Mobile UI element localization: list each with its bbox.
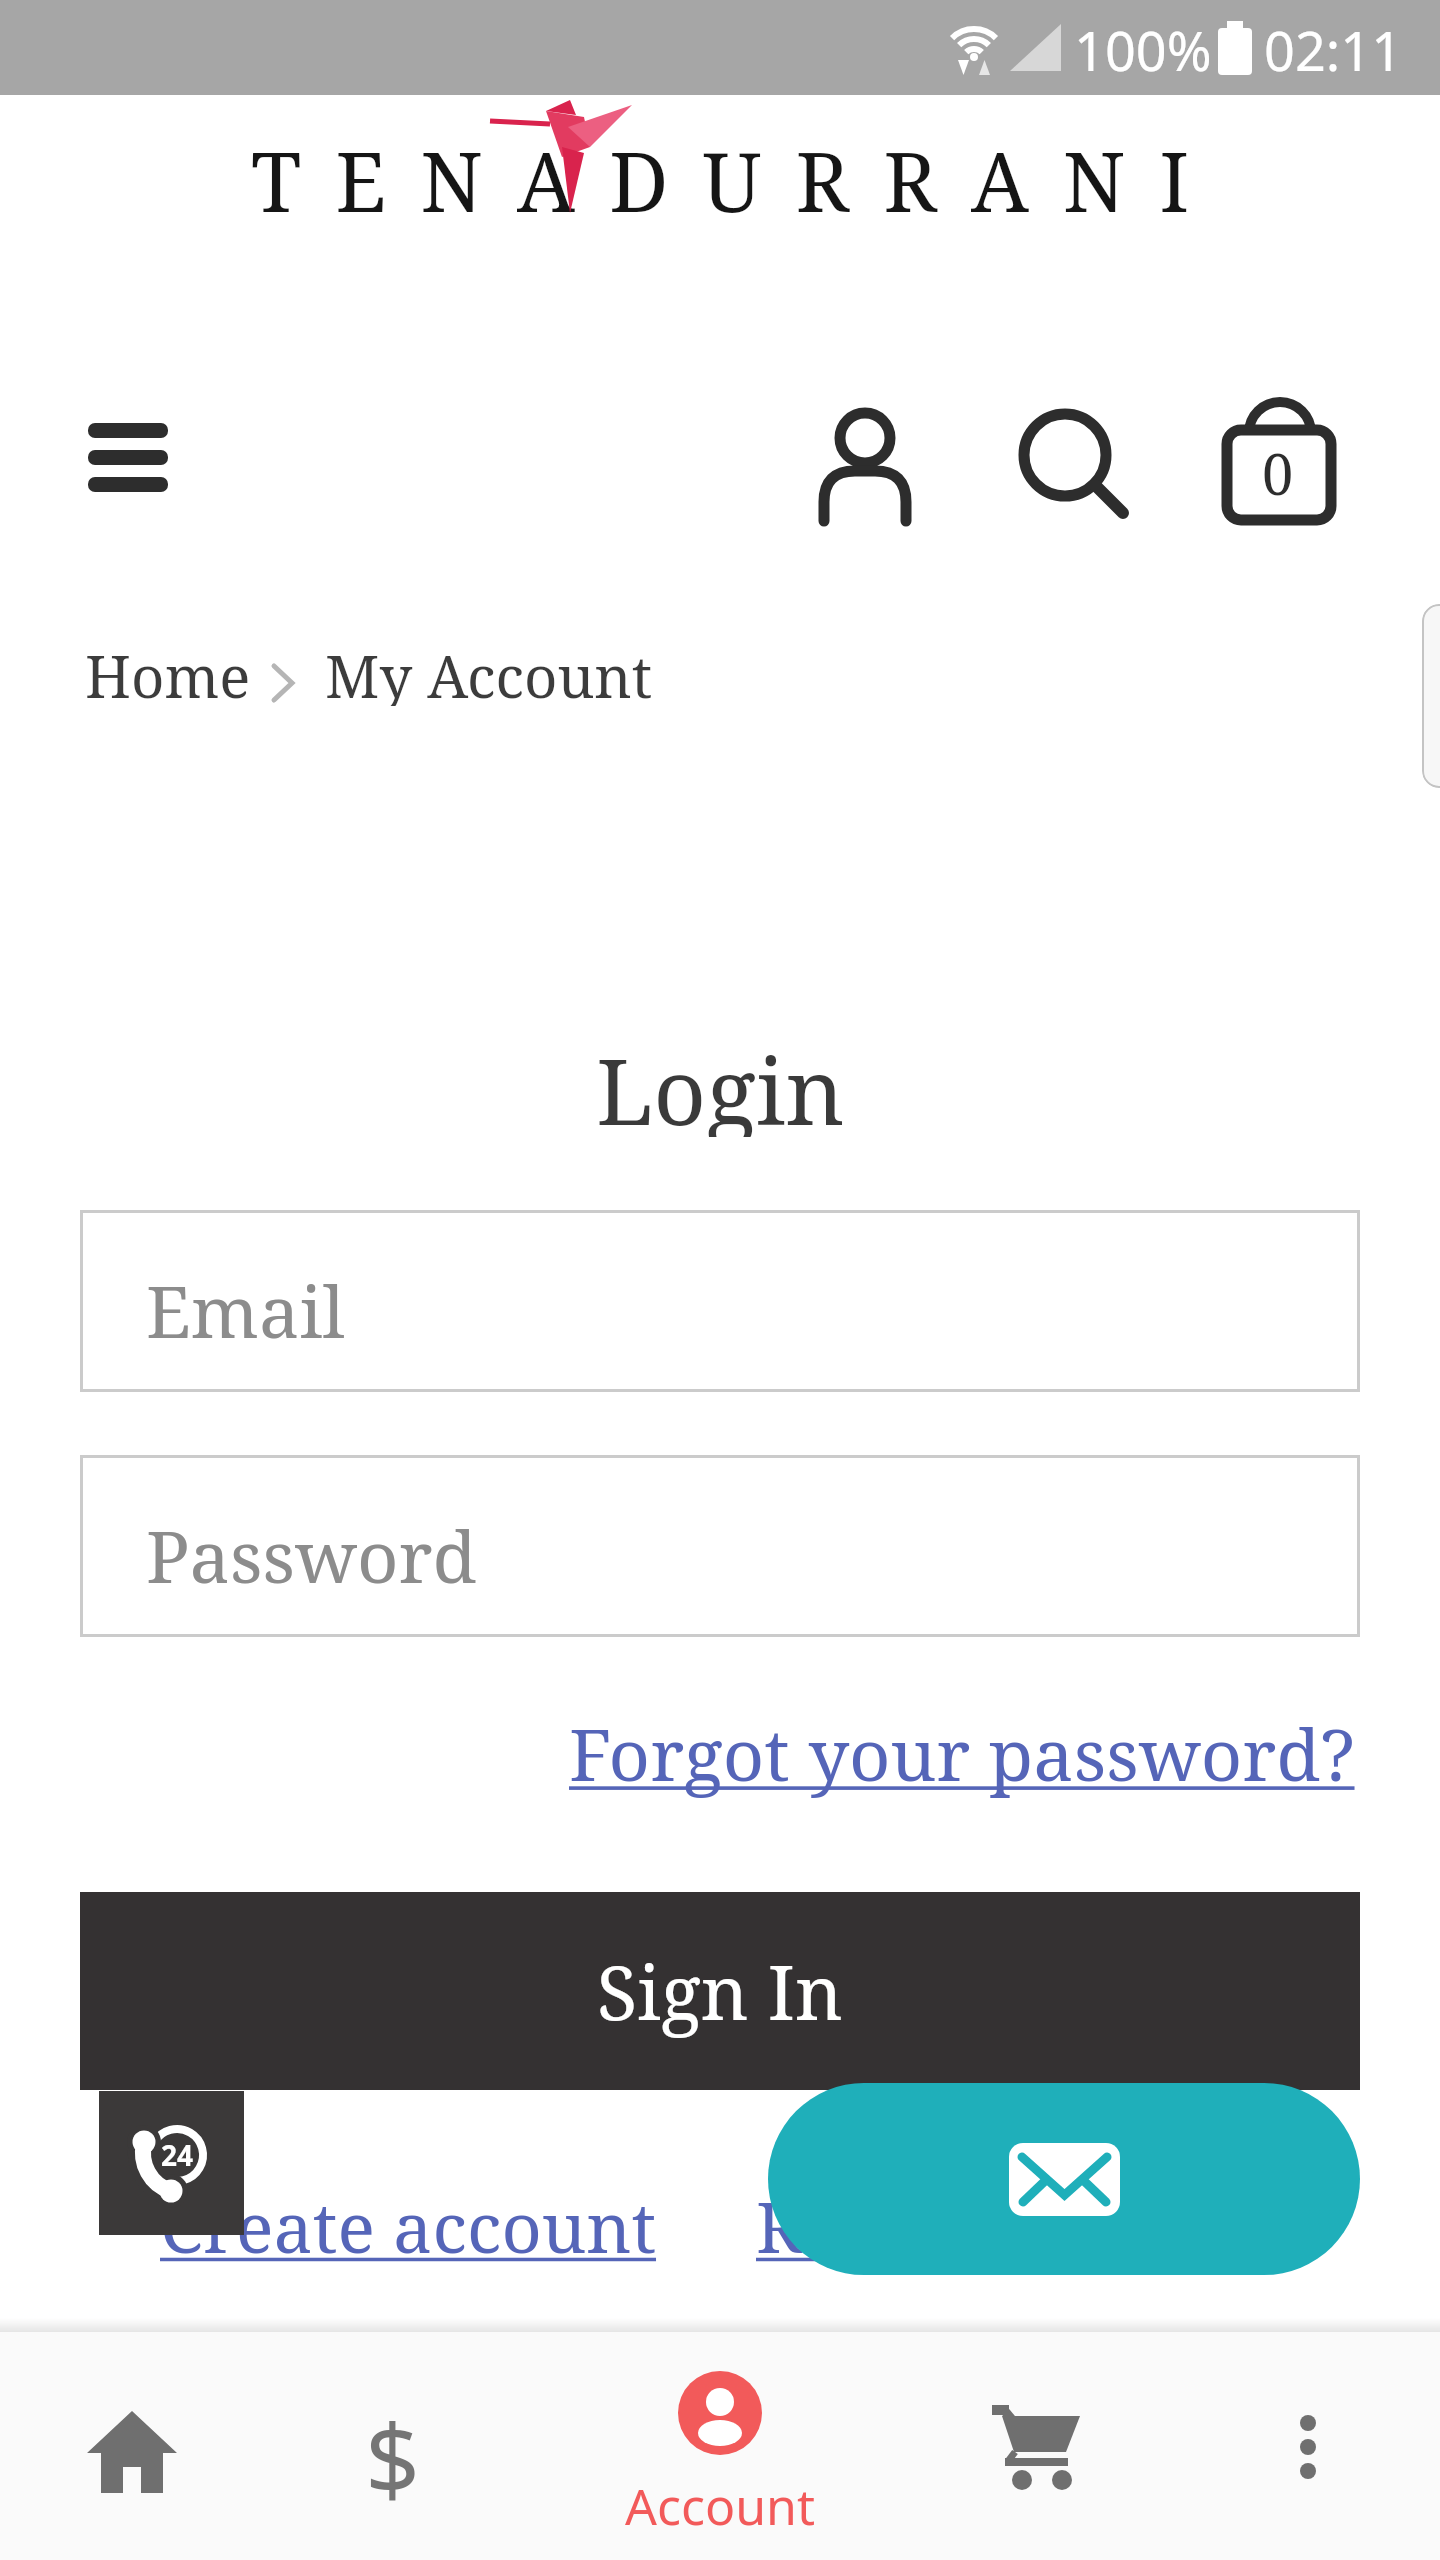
staticText: $: [365, 2392, 420, 2512]
staticText: 100%: [1074, 13, 1212, 81]
staticText: My Account: [325, 636, 653, 706]
staticText: TENA: [251, 124, 609, 236]
button[interactable]: Home: [85, 636, 251, 706]
button[interactable]: [970, 2392, 1110, 2502]
button[interactable]: [768, 2083, 1360, 2275]
button[interactable]: [1015, 405, 1135, 525]
button[interactable]: 24: [99, 2091, 244, 2235]
button[interactable]: [60, 2402, 204, 2502]
button[interactable]: Create account: [160, 2178, 657, 2268]
button[interactable]: $: [332, 2392, 452, 2512]
staticText: 0: [1262, 435, 1294, 507]
button[interactable]: Account: [600, 2362, 840, 2560]
staticText: Email: [146, 1261, 345, 1359]
button[interactable]: [88, 423, 168, 495]
staticText: Return: [756, 2178, 987, 2268]
staticText: Home: [85, 636, 251, 706]
button[interactable]: Email: [146, 1228, 1360, 1392]
staticText: Password: [146, 1506, 477, 1604]
button[interactable]: Password: [146, 1473, 1360, 1637]
button[interactable]: Sign In: [80, 1892, 1360, 2090]
button[interactable]: 0: [1222, 395, 1342, 530]
button[interactable]: [1250, 2392, 1366, 2502]
staticText: Forgot your password?: [569, 1704, 1355, 1802]
staticText: Sign In: [597, 1941, 843, 2042]
staticText: 02:11: [1264, 13, 1403, 81]
staticText: Account: [625, 2472, 816, 2532]
button[interactable]: [815, 405, 915, 523]
staticText: 24: [161, 2136, 194, 2174]
staticText: DURRANI: [609, 124, 1224, 236]
staticText: Login: [596, 1027, 845, 1137]
staticText: Create account: [160, 2178, 657, 2268]
button[interactable]: Forgot your password?: [0, 1703, 1355, 1803]
